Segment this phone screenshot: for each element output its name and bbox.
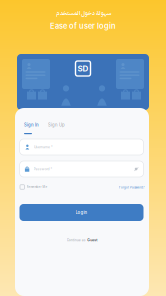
staticText: Continue as — [67, 238, 86, 242]
button[interactable]: Sign In — [24, 122, 42, 128]
staticText: Remember Me — [26, 185, 47, 189]
staticText: SD — [77, 64, 88, 73]
button[interactable]: Forgot Password? — [93, 185, 144, 190]
staticText: Username * — [34, 145, 53, 149]
button[interactable]: Remember Me — [20, 184, 65, 190]
staticText: Ease of user login — [50, 21, 116, 30]
staticText: Forgot Password? — [119, 186, 144, 189]
staticText: Sign In — [24, 122, 39, 128]
button[interactable]: Login — [19, 204, 143, 221]
staticText: سهولة دخول المستخدم — [55, 9, 110, 17]
staticText: Sign Up — [48, 122, 65, 128]
staticText: Login — [75, 210, 87, 215]
button[interactable]: Continue as — [15, 237, 149, 243]
staticText: Guest — [87, 238, 97, 242]
button[interactable]: Sign Up — [48, 122, 66, 128]
staticText: Password * — [34, 167, 53, 171]
